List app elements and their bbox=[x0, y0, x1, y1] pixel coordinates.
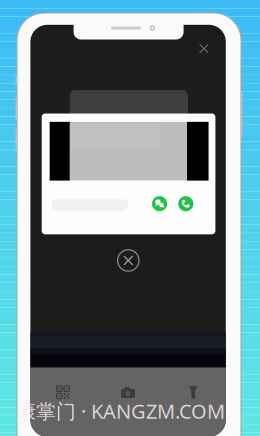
button[interactable]: Flashlight bbox=[161, 370, 226, 415]
button[interactable]: Dismiss bbox=[112, 244, 144, 276]
button[interactable]: Scan QR code bbox=[30, 370, 95, 415]
button[interactable]: Close bbox=[191, 36, 217, 62]
staticText: 康掌门 · KANGZM.COM bbox=[16, 398, 225, 424]
button[interactable]: Call bbox=[177, 195, 194, 212]
button[interactable]: Camera bbox=[95, 370, 161, 415]
button[interactable]: Share to WeChat bbox=[151, 195, 168, 212]
